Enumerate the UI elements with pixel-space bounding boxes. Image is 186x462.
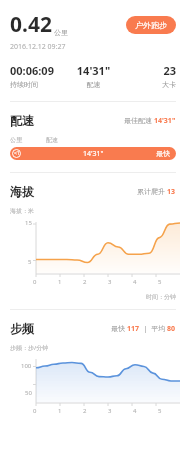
staticText: 4 [133, 407, 137, 415]
staticText: 公里 [54, 28, 68, 37]
staticText: 配速 [46, 136, 58, 144]
staticText: <1 [14, 150, 20, 157]
staticText: 14'31" [154, 116, 176, 126]
staticText: 15 [25, 219, 32, 227]
staticText: 0 [33, 407, 37, 415]
staticText: 配速 [10, 113, 34, 128]
staticText: 14'31" [66, 63, 121, 78]
button[interactable]: 户外跑步 [126, 16, 176, 34]
staticText: 最快 [156, 149, 170, 158]
staticText: 2016.12.12 09:27 [10, 42, 66, 52]
staticText: 配速 [66, 80, 121, 89]
staticText: 2 [83, 278, 87, 286]
staticText: 最佳配速 [124, 116, 154, 126]
staticText: 户外跑步 [135, 20, 167, 30]
staticText: 0.42 [10, 10, 52, 39]
staticText: 公里 [10, 136, 22, 144]
staticText: 13 [167, 187, 176, 197]
staticText: 5 [28, 258, 32, 266]
staticText: 5 [158, 278, 162, 286]
staticText: 1 [58, 278, 62, 286]
staticText: 海拔 [10, 184, 34, 199]
staticText: 00:06:09 [10, 63, 66, 78]
staticText: 117 [127, 324, 140, 334]
staticText: 4 [133, 278, 137, 286]
staticText: 最快 [111, 324, 127, 334]
staticText: 2 [83, 407, 87, 415]
staticText: 5 [158, 407, 162, 415]
button[interactable]: <1 [10, 147, 176, 160]
staticText: 持续时间 [10, 80, 66, 89]
staticText: 23 [121, 63, 176, 78]
staticText: 大卡 [121, 80, 176, 89]
staticText: 累计爬升 [137, 187, 167, 197]
staticText: | 平均 [140, 324, 167, 334]
staticText: 14'31" [83, 149, 104, 159]
staticText: 80 [167, 324, 176, 334]
staticText: 100 [21, 362, 32, 370]
staticText: 海拔：米 [10, 207, 34, 215]
staticText: 0 [33, 278, 37, 286]
staticText: 3 [108, 407, 112, 415]
staticText: 时间：分钟 [146, 293, 176, 301]
staticText: 步频：步/分钟 [10, 344, 49, 352]
staticText: 1 [58, 407, 62, 415]
staticText: 3 [108, 278, 112, 286]
staticText: 步频 [10, 321, 34, 336]
staticText: 50 [25, 389, 32, 397]
